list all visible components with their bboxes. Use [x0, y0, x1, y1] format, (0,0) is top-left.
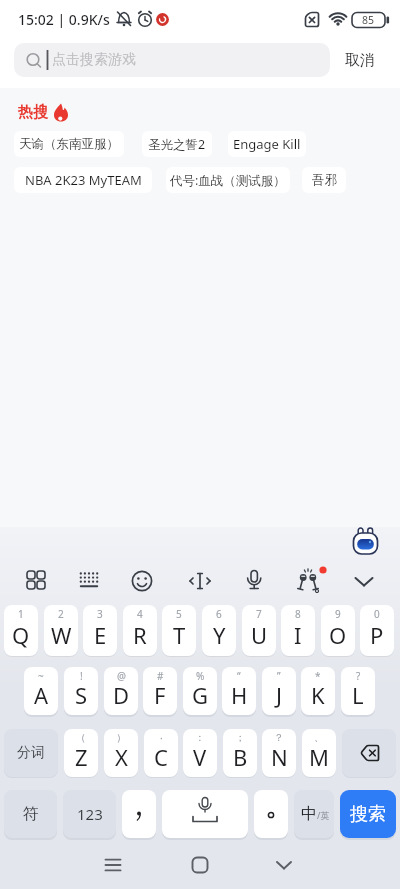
- button[interactable]: 4: [123, 605, 157, 656]
- staticText: B: [233, 742, 248, 772]
- button[interactable]: 代号:血战（测试服）: [166, 167, 290, 193]
- staticText: W: [51, 620, 72, 650]
- button[interactable]: 、: [302, 729, 336, 777]
- button[interactable]: Engage Kill: [228, 131, 306, 157]
- button[interactable]: 圣光之誓2: [142, 131, 212, 157]
- button[interactable]: ”: [262, 667, 296, 715]
- staticText: 0: [374, 607, 380, 621]
- staticText: C: [154, 742, 168, 772]
- button[interactable]: （: [64, 729, 98, 777]
- staticText: 、: [314, 731, 324, 744]
- button[interactable]: [294, 566, 324, 596]
- staticText: E: [94, 620, 107, 650]
- staticText: V: [193, 742, 207, 772]
- button[interactable]: 3: [83, 605, 117, 656]
- button[interactable]: 6: [202, 605, 236, 656]
- staticText: 天谕（东南亚服）: [19, 136, 119, 152]
- staticText: R: [133, 620, 147, 650]
- button[interactable]: ：: [183, 729, 217, 777]
- staticText: （: [76, 731, 86, 744]
- staticText: Engage Kill: [233, 135, 301, 153]
- staticText: 圣光之誓2: [148, 136, 206, 153]
- button[interactable]: ）: [104, 729, 138, 777]
- button[interactable]: 8: [281, 605, 315, 656]
- button[interactable]: [254, 790, 288, 838]
- staticText: J: [276, 680, 283, 710]
- staticText: @: [117, 669, 126, 683]
- staticText: 6: [216, 607, 222, 621]
- button[interactable]: 2: [44, 605, 78, 656]
- button[interactable]: 取消: [332, 43, 388, 77]
- staticText: 取消: [345, 51, 375, 70]
- button[interactable]: 7: [242, 605, 276, 656]
- button[interactable]: 天谕（东南亚服）: [14, 131, 124, 157]
- staticText: G: [192, 680, 209, 710]
- button[interactable]: ~: [24, 667, 58, 715]
- staticText: A: [34, 680, 49, 710]
- button[interactable]: 5: [162, 605, 196, 656]
- button[interactable]: NBA 2K23 MyTEAM: [14, 167, 152, 193]
- staticText: K: [311, 680, 325, 710]
- button[interactable]: [188, 853, 212, 877]
- button[interactable]: [122, 790, 156, 838]
- button[interactable]: ?: [341, 667, 375, 715]
- staticText: 分词: [17, 744, 45, 762]
- staticText: 7: [256, 607, 262, 621]
- button[interactable]: [162, 790, 248, 838]
- staticText: P: [370, 620, 384, 650]
- button[interactable]: 0: [360, 605, 394, 656]
- button[interactable]: !: [64, 667, 98, 715]
- staticText: D: [113, 680, 130, 710]
- button[interactable]: 点击搜索游戏: [14, 43, 330, 77]
- staticText: 热搜: [18, 103, 48, 122]
- staticText: ~: [38, 669, 44, 683]
- button[interactable]: [188, 570, 212, 592]
- staticText: 85: [362, 13, 375, 27]
- staticText: NBA 2K23 MyTEAM: [25, 171, 142, 189]
- staticText: F: [154, 680, 166, 710]
- staticText: H: [231, 680, 248, 710]
- button[interactable]: [25, 569, 47, 591]
- staticText: Q: [12, 620, 30, 650]
- staticText: 5: [176, 607, 182, 621]
- button[interactable]: ·: [144, 729, 178, 777]
- staticText: *: [315, 669, 321, 683]
- button[interactable]: [352, 572, 376, 590]
- button[interactable]: ；: [223, 729, 257, 777]
- staticText: 9: [335, 607, 341, 621]
- button[interactable]: 分词: [4, 729, 58, 777]
- button[interactable]: [131, 570, 153, 592]
- staticText: 1: [18, 607, 24, 621]
- staticText: ）: [116, 731, 126, 744]
- button[interactable]: 123: [63, 790, 116, 838]
- staticText: 代号:血战（测试服）: [170, 172, 286, 189]
- staticText: M: [309, 742, 329, 772]
- button[interactable]: “: [222, 667, 256, 715]
- button[interactable]: 9: [321, 605, 355, 656]
- button[interactable]: [101, 853, 125, 877]
- button[interactable]: 吾邪: [302, 167, 346, 193]
- button[interactable]: [272, 853, 296, 877]
- staticText: ?: [356, 669, 361, 683]
- staticText: ”: [277, 669, 281, 683]
- staticText: “: [237, 669, 241, 683]
- staticText: 符: [23, 804, 39, 824]
- button[interactable]: 搜索: [340, 790, 396, 838]
- button[interactable]: 符: [4, 790, 57, 838]
- button[interactable]: [78, 569, 100, 591]
- staticText: ；: [235, 731, 245, 744]
- staticText: 8: [295, 607, 301, 621]
- button[interactable]: @: [104, 667, 138, 715]
- button[interactable]: #: [143, 667, 177, 715]
- button[interactable]: 中: [294, 790, 334, 838]
- staticText: 2: [58, 607, 64, 621]
- button[interactable]: [342, 729, 396, 777]
- staticText: ？: [274, 731, 284, 744]
- button[interactable]: 1: [4, 605, 38, 656]
- button[interactable]: [243, 568, 265, 594]
- button[interactable]: %: [183, 667, 217, 715]
- staticText: ·: [160, 731, 163, 745]
- button[interactable]: ？: [262, 729, 296, 777]
- staticText: O: [329, 620, 347, 650]
- button[interactable]: *: [301, 667, 335, 715]
